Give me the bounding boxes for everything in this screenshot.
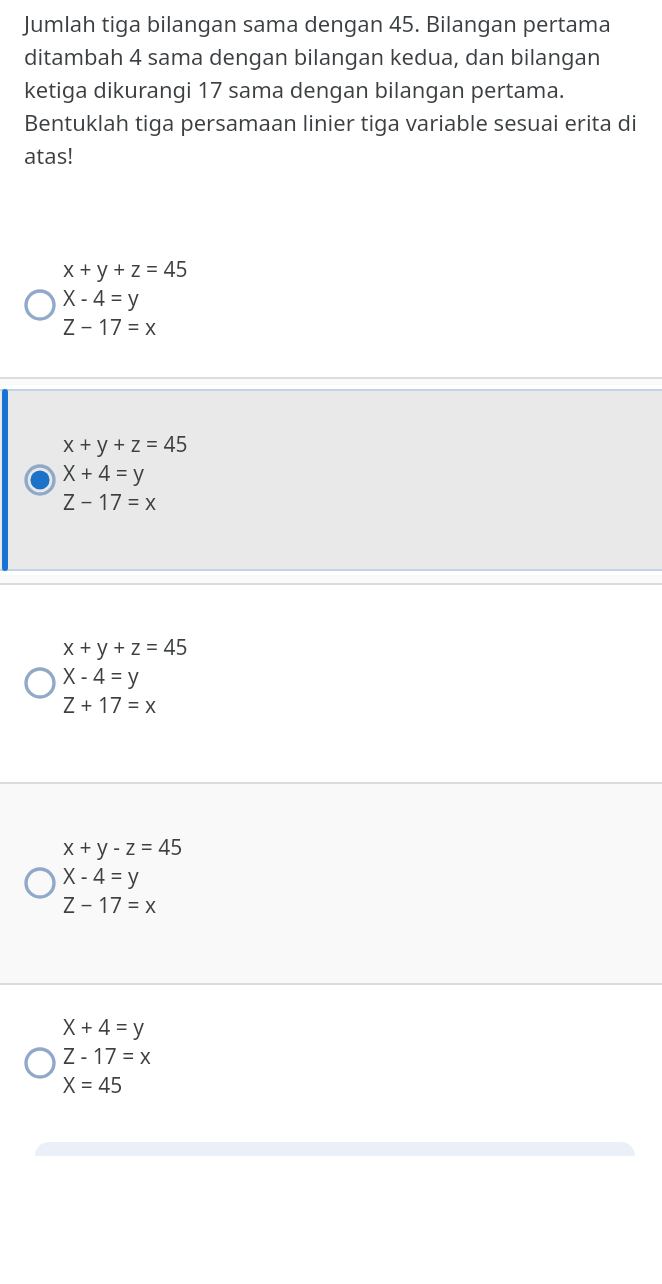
staticText: Jumlah tiga bilangan sama dengan 45. Bil… (24, 8, 648, 171)
staticText: Z - 17 = x (63, 1042, 151, 1071)
button[interactable]: x + y + z = 45 (0, 585, 662, 782)
staticText: X - 4 = y (63, 862, 139, 891)
staticText: Z − 17 = x (63, 891, 157, 920)
staticText: X + 4 = y (63, 459, 144, 488)
button[interactable]: X + 4 = y (0, 985, 662, 1142)
staticText: x + y + z = 45 (63, 255, 188, 284)
staticText: X - 4 = y (63, 284, 139, 313)
staticText: x + y + z = 45 (63, 633, 188, 662)
staticText: X + 4 = y (63, 1013, 144, 1042)
staticText: x + y + z = 45 (63, 430, 188, 459)
staticText: Z − 17 = x (63, 488, 157, 517)
staticText: Z − 17 = x (63, 313, 157, 342)
button[interactable]: x + y + z = 45 (0, 233, 662, 377)
staticText: X - 4 = y (63, 662, 139, 691)
staticText: X = 45 (63, 1071, 123, 1100)
button[interactable]: x + y + z = 45 (0, 385, 662, 575)
button[interactable]: x + y - z = 45 (0, 784, 662, 983)
staticText: x + y - z = 45 (63, 833, 183, 862)
staticText: Z + 17 = x (63, 691, 157, 720)
